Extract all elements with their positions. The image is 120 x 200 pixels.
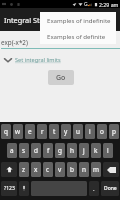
button[interactable]: Go <box>48 70 74 85</box>
button[interactable]: s <box>19 143 29 158</box>
button[interactable]: e <box>25 124 35 139</box>
button[interactable]: l <box>103 143 113 158</box>
button[interactable]: t <box>49 124 59 139</box>
staticText: t <box>53 127 56 136</box>
staticText: y <box>64 127 68 136</box>
staticText: c <box>46 165 50 174</box>
staticText: n <box>82 165 86 174</box>
staticText: Done <box>104 185 117 192</box>
staticText: p <box>112 127 116 136</box>
button[interactable]: w <box>13 124 23 139</box>
staticText: u <box>76 127 80 136</box>
staticText: v <box>58 165 62 174</box>
staticText: o <box>100 127 104 136</box>
staticText: Examples of definite <box>47 32 106 40</box>
staticText: Examples of indefinite <box>47 16 111 24</box>
button[interactable]: y <box>61 124 71 139</box>
staticText: Integral Steps <box>4 15 52 25</box>
staticText: b <box>70 165 74 174</box>
staticText: j <box>83 146 85 155</box>
button[interactable]: x <box>31 162 41 177</box>
button[interactable]: a <box>7 143 17 158</box>
staticText: k <box>94 146 98 155</box>
staticText: exp(-x*2) <box>1 38 28 47</box>
button[interactable]: Symbols <box>1 181 17 196</box>
staticText: h <box>70 146 74 155</box>
button[interactable]: b <box>67 162 77 177</box>
button[interactable]: f <box>43 143 53 158</box>
button[interactable]: Shift <box>1 162 17 177</box>
button[interactable]: Examples of indefinite <box>40 12 116 28</box>
staticText: l <box>107 146 109 155</box>
staticText: m <box>93 165 99 174</box>
button[interactable]: k <box>91 143 101 158</box>
button[interactable]: Backspace <box>103 162 119 177</box>
staticText: d <box>34 146 38 155</box>
staticText: . <box>93 185 95 193</box>
button[interactable]: Set integral limits <box>2 55 63 65</box>
button[interactable]: m <box>91 162 101 177</box>
button[interactable]: h <box>67 143 77 158</box>
staticText: q <box>4 127 8 136</box>
button[interactable]: Done <box>101 181 119 196</box>
staticText: z <box>22 165 26 174</box>
staticText: f <box>47 146 50 155</box>
staticText: g <box>58 146 62 155</box>
button[interactable]: v <box>55 162 65 177</box>
staticText: x <box>34 165 38 174</box>
button[interactable]: Period <box>89 181 99 196</box>
button[interactable]: d <box>31 143 41 158</box>
staticText: r <box>41 127 44 136</box>
staticText: s <box>22 146 26 155</box>
staticText: i <box>89 127 91 136</box>
button[interactable]: j <box>79 143 89 158</box>
staticText: e <box>28 127 32 136</box>
staticText: 2:29 am <box>99 1 119 8</box>
button[interactable]: Voice input <box>19 181 29 196</box>
staticText: G <box>84 1 88 8</box>
button[interactable]: r <box>37 124 47 139</box>
staticText: a <box>10 146 14 155</box>
staticText: w <box>15 127 21 136</box>
button[interactable]: g <box>55 143 65 158</box>
button[interactable]: Examples of definite <box>40 28 116 44</box>
button[interactable]: o <box>97 124 107 139</box>
button[interactable]: i <box>85 124 95 139</box>
staticText: Set integral limits <box>15 56 61 64</box>
button[interactable]: u <box>73 124 83 139</box>
staticText: ?123 <box>4 185 15 192</box>
staticText: Go <box>56 73 66 83</box>
button[interactable]: z <box>19 162 29 177</box>
button[interactable]: p <box>109 124 119 139</box>
button[interactable]: q <box>1 124 11 139</box>
button[interactable]: c <box>43 162 53 177</box>
button[interactable]: n <box>79 162 89 177</box>
